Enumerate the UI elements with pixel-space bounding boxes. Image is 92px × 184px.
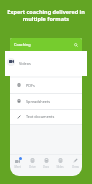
staticText: Videos bbox=[19, 61, 31, 66]
button[interactable]: Text documents bbox=[10, 110, 82, 125]
button[interactable]: Coaching bbox=[10, 38, 82, 51]
button[interactable]: Docs bbox=[39, 158, 53, 169]
button[interactable]: Drive bbox=[25, 158, 39, 169]
button[interactable]: Draw bbox=[68, 158, 82, 169]
staticText: Text documents bbox=[26, 114, 55, 119]
other: Search bbox=[74, 43, 78, 47]
button[interactable]: Videos bbox=[5, 51, 87, 76]
button[interactable]: Meet bbox=[10, 158, 24, 169]
button[interactable]: Slides bbox=[53, 158, 67, 169]
staticText: multiple formats bbox=[0, 15, 92, 22]
staticText: Meet bbox=[14, 165, 21, 169]
staticText: Coaching bbox=[14, 42, 31, 47]
staticText: PDFs bbox=[26, 83, 35, 88]
button[interactable]: PDFs bbox=[10, 78, 82, 94]
staticText: Draw bbox=[72, 165, 79, 169]
staticText: Drive bbox=[29, 165, 36, 169]
staticText: Spreadsheets bbox=[26, 99, 51, 104]
staticText: Slides bbox=[56, 165, 64, 169]
staticText: Docs bbox=[43, 165, 49, 169]
button[interactable]: Spreadsheets bbox=[10, 94, 82, 110]
staticText: Expert coaching delivered in bbox=[0, 8, 92, 15]
